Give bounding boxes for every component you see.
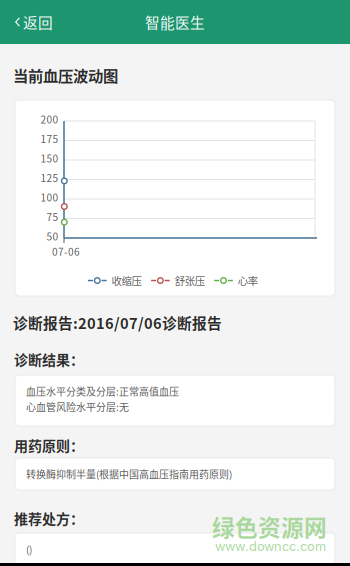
staticText: 125 <box>40 170 58 185</box>
staticText: 心率 <box>238 273 258 288</box>
staticText: www.downcc.com <box>215 538 326 554</box>
staticText: 智能医生 <box>145 11 205 33</box>
staticText: 血压水平分类及分层:正常高值血压 <box>26 384 179 398</box>
staticText: 75 <box>46 209 58 224</box>
staticText: 舒张压 <box>175 273 205 288</box>
staticText: 推荐处方： <box>14 508 84 528</box>
staticText: 150 <box>40 151 58 165</box>
staticText: 返回 <box>23 11 53 33</box>
staticText: 175 <box>40 131 58 146</box>
staticText: 心血管风险水平分层:无 <box>26 399 129 414</box>
staticText: 诊断结果： <box>14 349 84 369</box>
button[interactable]: 返回 <box>0 0 65 44</box>
staticText: 用药原则： <box>14 435 84 455</box>
staticText: 当前血压波动图 <box>13 64 118 86</box>
staticText: 转换酶抑制半量(根据中国高血压指南用药原则) <box>26 467 232 481</box>
staticText: 50 <box>46 229 58 243</box>
staticText: () <box>26 542 32 556</box>
staticText: 200 <box>40 112 58 126</box>
staticText: 100 <box>40 190 58 204</box>
staticText: 绿色资源网 <box>212 510 327 543</box>
staticText: 收缩压 <box>112 273 142 288</box>
staticText: 诊断报告:2016/07/06诊断报告 <box>13 312 222 333</box>
staticText: 07-06 <box>52 244 80 259</box>
